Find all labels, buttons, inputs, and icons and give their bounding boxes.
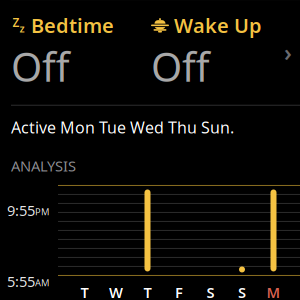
staticText: Off — [11, 40, 70, 93]
staticText: S — [238, 282, 246, 300]
staticText: 5:55 — [7, 271, 35, 291]
staticText: Off — [151, 40, 210, 93]
staticText: F — [175, 282, 183, 300]
staticText: 9:55 — [7, 200, 35, 220]
staticText: T — [143, 282, 151, 300]
staticText: ANALYSIS — [11, 156, 76, 175]
staticText: M — [266, 282, 280, 300]
staticText: › — [284, 37, 292, 67]
staticText: AM — [35, 276, 49, 289]
staticText: Bedtime — [31, 12, 114, 39]
staticText: T — [80, 282, 88, 300]
button[interactable]: Z — [0, 0, 300, 105]
staticText: z — [19, 21, 24, 35]
staticText: Wake Up — [174, 12, 262, 39]
staticText: Active Mon Tue Wed Thu Sun. — [11, 117, 234, 138]
staticText: W — [109, 282, 123, 300]
staticText: Z — [12, 14, 19, 30]
staticText: S — [206, 282, 214, 300]
staticText: PM — [35, 205, 49, 218]
